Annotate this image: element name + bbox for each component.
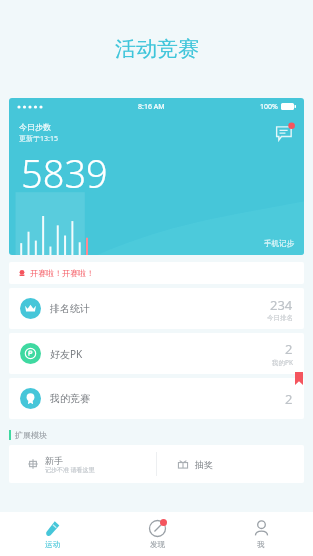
staticText: 运动 [45,540,60,549]
staticText: 新手 [45,455,63,466]
staticText: 扩展模块 [15,430,47,440]
staticText: 我 [257,540,265,549]
button[interactable]: 新手 [9,445,156,483]
button[interactable]: 运动 [0,512,105,556]
staticText: 抽奖 [195,459,213,470]
staticText: 234 [270,296,293,314]
button[interactable]: 发现 [105,512,209,556]
staticText: 发现 [150,540,165,549]
staticText: 100% [260,102,278,112]
staticText: 5839 [21,147,108,199]
staticText: 记步不准 请看这里 [45,466,95,474]
staticText: 今日排名 [267,314,293,322]
staticText: 我的竞赛 [50,392,90,405]
button[interactable]: 好友PK [9,333,304,374]
staticText: 活动竞赛 [115,36,199,62]
staticText: 2 [285,390,293,408]
button[interactable]: 我 [209,512,313,556]
staticText: 8:16 AM [138,102,165,112]
button[interactable]: 8:16 AM [9,98,304,255]
staticText: 开赛啦！开赛啦！ [30,268,94,278]
button[interactable]: 我的竞赛 [9,378,304,419]
button[interactable]: 开赛啦！开赛啦！ [9,262,304,284]
staticText: 更新于13:15 [19,134,58,144]
button[interactable]: 抽奖 [157,445,304,483]
staticText: 今日步数 [19,122,51,132]
staticText: 我的PK [272,358,293,367]
staticText: 好友PK [50,347,83,361]
button[interactable]: 排名统计 [9,288,304,329]
staticText: 2 [285,340,293,358]
staticText: 排名统计 [50,302,90,315]
button[interactable]: 消息 [274,122,296,144]
staticText: 手机记步 [264,239,294,248]
